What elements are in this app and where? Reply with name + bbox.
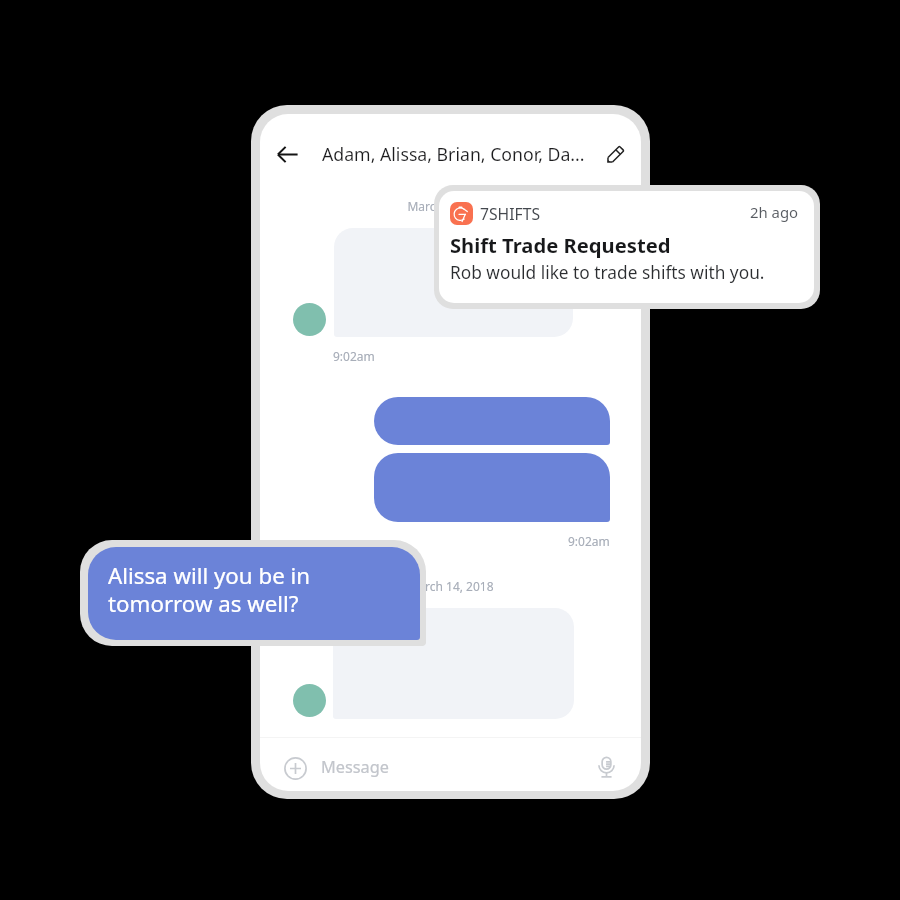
button[interactable]: Sent message [374,453,610,522]
staticText: Message [321,756,389,778]
button[interactable]: Edit [598,138,632,172]
button[interactable]: Add attachment [278,751,312,785]
button[interactable]: Back [270,137,304,171]
button[interactable]: Alissa will you be in [88,547,420,640]
staticText: Alissa will you be in [108,560,311,590]
staticText: Shift Trade Requested [450,231,671,259]
button[interactable]: Message from Alissa [334,228,573,337]
button[interactable]: Voice message [589,750,623,784]
staticText: tomorrow as well? [108,588,299,618]
button[interactable]: 7SHIFTS [439,191,814,303]
button[interactable]: Sent message [374,397,610,445]
button[interactable]: Message from Alissa [333,608,574,719]
staticText: Adam, Alissa, Brian, Conor, Da... [322,142,585,166]
staticText: 7SHIFTS [480,203,541,224]
staticText: March 14, 2018 [260,198,641,214]
staticText: March 14, 2018 [260,578,641,594]
staticText: 9:02am [333,348,375,364]
staticText: 9:02am [568,533,610,549]
staticText: Rob would like to trade shifts with you. [450,261,765,285]
button[interactable]: Message [315,742,583,791]
staticText: 2h ago [750,202,799,222]
